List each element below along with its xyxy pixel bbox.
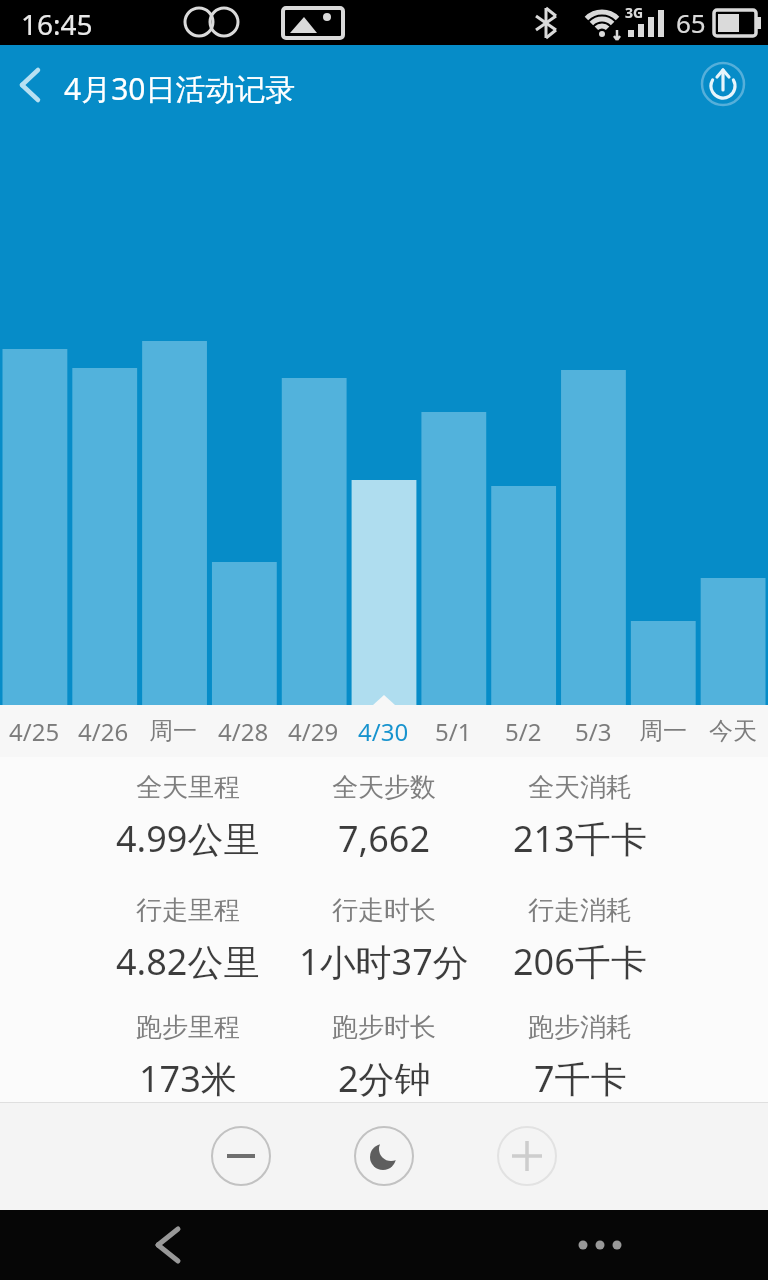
staticText: 跑步消耗 bbox=[528, 1011, 632, 1044]
staticText: 今天 bbox=[709, 716, 757, 746]
staticText: 4月30日活动记录 bbox=[64, 68, 296, 109]
staticText: 跑步时长 bbox=[332, 1011, 436, 1044]
button[interactable] bbox=[354, 1126, 414, 1186]
staticText: 4/29 bbox=[288, 715, 339, 748]
button[interactable]: 4/25 bbox=[0, 705, 69, 757]
button[interactable]: 全天里程 bbox=[90, 761, 286, 873]
staticText: 1小时37分 bbox=[299, 937, 469, 986]
button[interactable] bbox=[211, 1126, 271, 1186]
button[interactable]: 行走时长 bbox=[286, 883, 482, 996]
button[interactable] bbox=[497, 1126, 557, 1186]
staticText: 周一 bbox=[149, 716, 197, 746]
button[interactable]: 跑步时长 bbox=[286, 1001, 482, 1113]
staticText: 4/25 bbox=[9, 715, 60, 748]
button[interactable]: 周一 bbox=[628, 705, 698, 757]
staticText: 跑步里程 bbox=[136, 1011, 240, 1044]
staticText: 周一 bbox=[639, 716, 687, 746]
staticText: 4/26 bbox=[78, 715, 129, 748]
button[interactable]: 今天 bbox=[698, 705, 768, 757]
staticText: 行走时长 bbox=[332, 894, 436, 927]
button[interactable]: 全天步数 bbox=[286, 761, 482, 873]
button[interactable]: 4/26 bbox=[69, 705, 138, 757]
staticText: 4/28 bbox=[218, 715, 269, 748]
button[interactable]: 全天消耗 bbox=[482, 761, 678, 873]
staticText: 2分钟 bbox=[338, 1054, 431, 1103]
staticText: 4.99公里 bbox=[116, 814, 260, 863]
button[interactable]: 5/1 bbox=[418, 705, 488, 757]
staticText: 全天步数 bbox=[332, 771, 436, 804]
staticText: 全天里程 bbox=[136, 771, 240, 804]
button[interactable]: 4/29 bbox=[278, 705, 348, 757]
staticText: 3G bbox=[625, 3, 644, 22]
button[interactable]: 跑步消耗 bbox=[482, 1001, 678, 1113]
button[interactable] bbox=[560, 1210, 640, 1280]
button[interactable]: 行走消耗 bbox=[482, 883, 678, 996]
button[interactable] bbox=[130, 1210, 206, 1280]
staticText: 5/1 bbox=[435, 715, 472, 748]
staticText: 7千卡 bbox=[534, 1054, 627, 1103]
button[interactable] bbox=[695, 101, 751, 157]
button[interactable] bbox=[0, 45, 60, 125]
staticText: 4.82公里 bbox=[116, 937, 260, 986]
staticText: 213千卡 bbox=[513, 814, 647, 863]
staticText: 16:45 bbox=[21, 5, 93, 43]
staticText: 行走消耗 bbox=[528, 894, 632, 927]
staticText: 4/30 bbox=[358, 715, 409, 748]
staticText: 行走里程 bbox=[136, 894, 240, 927]
staticText: 173米 bbox=[139, 1054, 237, 1103]
button[interactable]: 跑步里程 bbox=[90, 1001, 286, 1113]
staticText: 5/3 bbox=[575, 715, 612, 748]
button[interactable]: 5/2 bbox=[488, 705, 558, 757]
button[interactable]: 4/30 bbox=[348, 705, 418, 757]
button[interactable]: 5/3 bbox=[558, 705, 628, 757]
staticText: 7,662 bbox=[338, 814, 431, 863]
button[interactable]: 周一 bbox=[138, 705, 208, 757]
button[interactable]: 4/28 bbox=[208, 705, 278, 757]
staticText: 5/2 bbox=[505, 715, 542, 748]
button[interactable]: 行走里程 bbox=[90, 883, 286, 996]
staticText: 全天消耗 bbox=[528, 771, 632, 804]
staticText: 206千卡 bbox=[513, 937, 647, 986]
staticText: 65 bbox=[676, 5, 706, 40]
